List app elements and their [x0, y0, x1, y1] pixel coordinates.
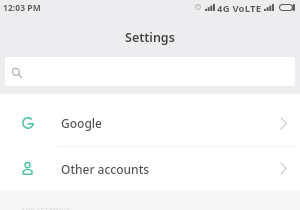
staticText: Google [61, 115, 102, 131]
button[interactable]: Google [0, 94, 300, 146]
other: Search [12, 68, 22, 78]
other: Battery [279, 4, 295, 11]
staticText: APP SETTINGS [21, 206, 71, 210]
other: Alarm [195, 4, 201, 10]
button[interactable]: Search [5, 57, 295, 86]
button[interactable]: Other accounts [0, 147, 300, 190]
staticText: Other accounts [61, 161, 150, 177]
other: Signal strength [264, 4, 274, 11]
staticText: Settings [125, 29, 175, 46]
other: Signal strength [205, 4, 215, 11]
staticText: 12:03 PM [3, 2, 41, 14]
staticText: 4G VoLTE [217, 2, 262, 15]
